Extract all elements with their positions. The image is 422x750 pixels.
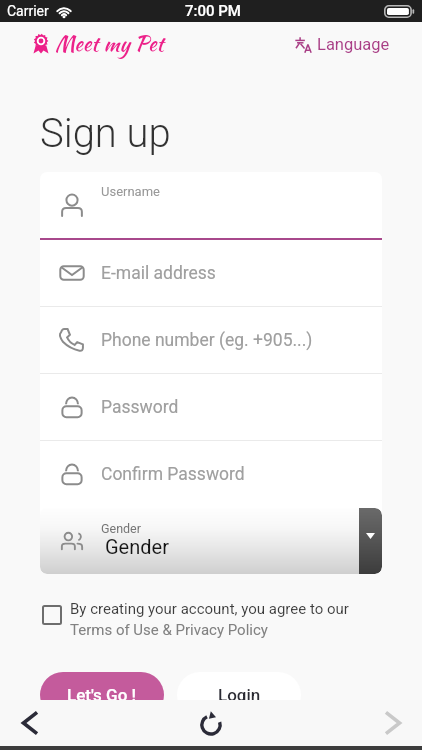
button[interactable]: Phone number (eg. +905...) [40,307,382,374]
staticText: Meet my Pet [55,28,164,58]
staticText: Gender [101,521,141,536]
staticText: Password [101,397,179,418]
button[interactable]: Username [40,172,382,240]
staticText: Confirm Password [101,464,245,485]
staticText: Carrier [7,3,49,19]
staticText: Phone number (eg. +905...) [101,330,313,351]
staticText: Terms of Use & Privacy Policy [70,621,268,639]
staticText: 7:00 PM [185,2,241,20]
staticText: Let's Go ! [67,685,137,705]
button[interactable]: By creating your account, you agree to o… [42,600,349,639]
button[interactable]: Forward [342,700,422,746]
staticText: Language [317,35,390,54]
button[interactable]: Meet my Pet [33,29,164,59]
button[interactable]: Open gender dropdown [359,508,382,574]
button[interactable]: Language [295,35,390,54]
button[interactable]: Gender [40,508,382,574]
button[interactable]: Reload [171,700,251,746]
button[interactable]: Back [0,700,80,746]
staticText: E-mail address [101,263,216,284]
staticText: Login [218,685,261,705]
staticText: Username [101,184,160,199]
button[interactable]: E-mail address [40,240,382,307]
button[interactable]: Password [40,374,382,441]
button[interactable]: Login [177,672,301,718]
staticText: Sign up [40,110,171,157]
staticText: Gender [105,535,169,558]
button[interactable]: Let's Go ! [40,672,164,718]
staticText: By creating your account, you agree to o… [70,600,349,618]
button[interactable]: Confirm Password [40,441,382,508]
